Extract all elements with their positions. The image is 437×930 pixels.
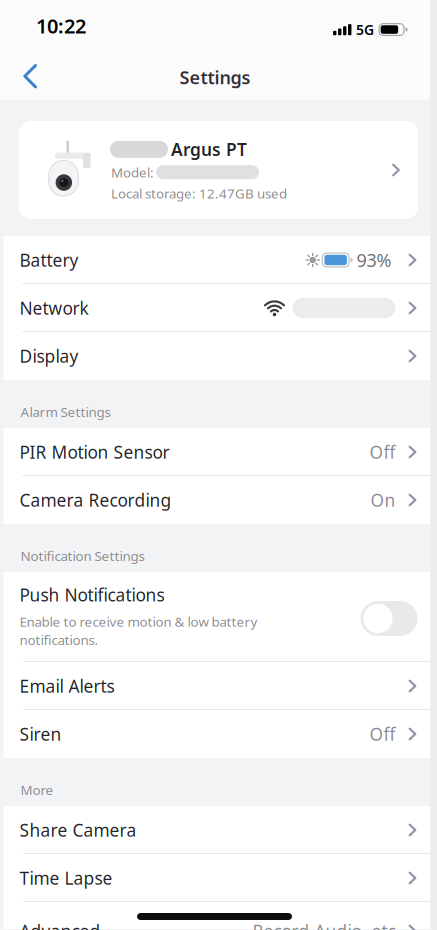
button[interactable]: Share Camera	[3, 806, 433, 854]
staticText: Local storage: 12.47GB used	[111, 184, 287, 202]
staticText: Time Lapse	[19, 866, 112, 890]
staticText: Argus PT	[171, 137, 247, 161]
button[interactable]: Battery	[3, 236, 433, 284]
staticText: Siren	[19, 722, 61, 746]
staticText: Advanced	[19, 919, 100, 930]
staticText: Record Audio, etc	[252, 919, 395, 930]
staticText: On	[370, 488, 395, 512]
staticText: Settings	[179, 65, 250, 89]
button[interactable]: Network	[3, 284, 433, 332]
staticText: 5G	[356, 20, 374, 39]
staticText: Network	[19, 296, 88, 320]
staticText: PIR Motion Sensor	[19, 440, 169, 464]
staticText: Enable to receive motion & low battery	[19, 613, 257, 631]
button[interactable]: Siren	[3, 710, 433, 758]
button[interactable]: Email Alerts	[3, 662, 433, 710]
staticText: More	[20, 781, 53, 799]
button[interactable]: Time Lapse	[3, 854, 433, 902]
button[interactable]: Advanced	[3, 902, 433, 929]
staticText: Off	[369, 440, 395, 464]
staticText: Off	[369, 722, 395, 746]
staticText: 93%	[356, 248, 391, 272]
staticText: notifications.	[19, 631, 98, 649]
staticText: Camera Recording	[19, 488, 171, 512]
staticText: Model:	[111, 163, 154, 181]
button[interactable]: Back	[0, 54, 38, 89]
staticText: Display	[19, 344, 78, 368]
staticText: Battery	[19, 248, 78, 272]
staticText: Notification Settings	[20, 547, 144, 565]
button[interactable]: PIR Motion Sensor	[3, 428, 433, 476]
staticText: Push Notifications	[19, 583, 164, 607]
button[interactable]: Push Notifications	[360, 601, 417, 636]
staticText: Email Alerts	[19, 674, 114, 698]
button[interactable]: Camera Recording	[3, 476, 433, 524]
staticText: 10:22	[36, 12, 86, 39]
staticText: Share Camera	[19, 818, 136, 842]
button[interactable]: Argus PT	[19, 121, 418, 219]
staticText: Alarm Settings	[20, 403, 110, 421]
button[interactable]: Display	[3, 332, 433, 380]
